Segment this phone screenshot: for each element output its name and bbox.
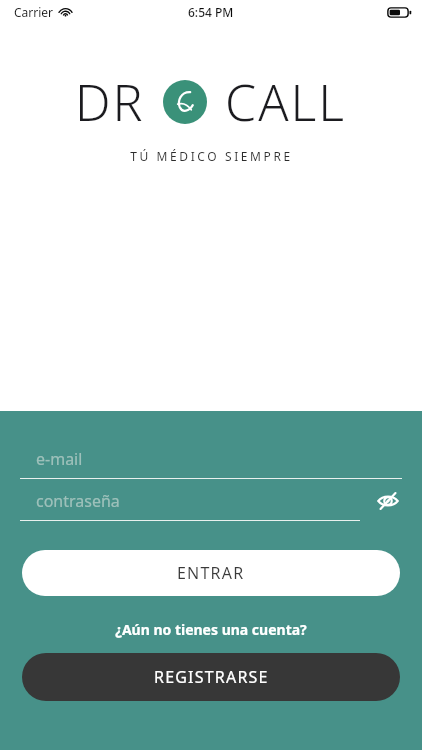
staticText: TÚ MÉDICO SIEMPRE (130, 148, 293, 164)
button[interactable]: e-mail (20, 440, 402, 478)
button[interactable]: REGISTRARSE (22, 653, 400, 701)
staticText: CALL (225, 68, 347, 136)
staticText: REGISTRARSE (154, 666, 269, 688)
staticText: ¿Aún no tienes una cuenta? (115, 620, 307, 639)
staticText: contraseña (36, 490, 120, 512)
button[interactable]: ¿Aún no tienes una cuenta? (0, 620, 422, 639)
staticText: DR (75, 68, 145, 136)
button[interactable]: contraseña (20, 482, 352, 520)
staticText: e-mail (36, 448, 83, 470)
staticText: 6:54 PM (188, 4, 234, 20)
staticText: ENTRAR (177, 562, 245, 584)
staticText: Carrier (14, 4, 54, 20)
button[interactable]: ENTRAR (22, 550, 400, 596)
button[interactable]: Mostrar contraseña (370, 483, 406, 519)
